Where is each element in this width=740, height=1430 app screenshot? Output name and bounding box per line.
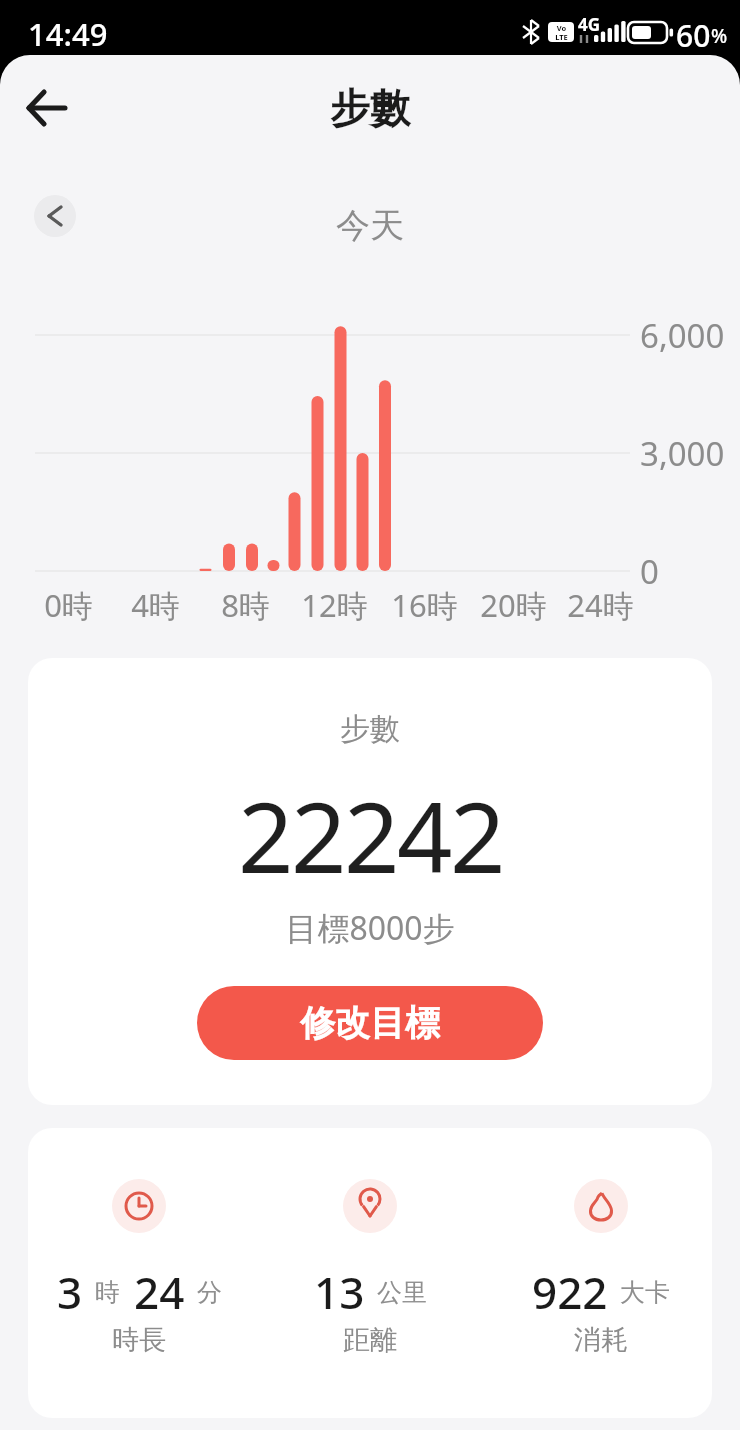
staticText: 20時 <box>480 584 547 626</box>
staticText: 16時 <box>391 584 458 626</box>
staticText: 24時 <box>567 584 634 626</box>
staticText: 0時 <box>44 584 93 626</box>
button[interactable] <box>34 195 76 237</box>
staticText: 步數 <box>340 710 400 748</box>
staticText: 距離 <box>343 1323 397 1357</box>
staticText: 分 <box>197 1277 222 1308</box>
staticText: 8時 <box>221 584 270 626</box>
staticText: 時 <box>95 1277 120 1308</box>
staticText: 3 <box>57 1262 83 1322</box>
staticText: 24 <box>134 1262 185 1322</box>
staticText: 14:49 <box>28 13 108 55</box>
staticText: 12時 <box>301 584 368 626</box>
button[interactable] <box>18 80 74 136</box>
staticText: 13 <box>314 1262 365 1322</box>
staticText: % <box>711 23 728 49</box>
staticText: Vo LTE <box>555 23 568 42</box>
staticText: 4G <box>578 13 601 36</box>
staticText: 公里 <box>377 1277 427 1308</box>
staticText: 22242 <box>238 769 503 901</box>
staticText: 3,000 <box>640 431 725 475</box>
button[interactable]: 修改目標 <box>197 986 543 1060</box>
staticText: 60 <box>676 15 711 56</box>
staticText: 0 <box>640 549 659 593</box>
staticText: 4時 <box>131 584 180 626</box>
staticText: 922 <box>532 1262 608 1322</box>
staticText: 今天 <box>336 204 404 247</box>
staticText: 步數 <box>330 83 410 133</box>
staticText: 修改目標 <box>300 1001 440 1045</box>
staticText: 目標8000步 <box>285 906 455 950</box>
staticText: 消耗 <box>574 1323 628 1357</box>
staticText: 大卡 <box>620 1277 670 1308</box>
staticText: 6,000 <box>640 313 725 357</box>
staticText: 時長 <box>112 1323 166 1357</box>
